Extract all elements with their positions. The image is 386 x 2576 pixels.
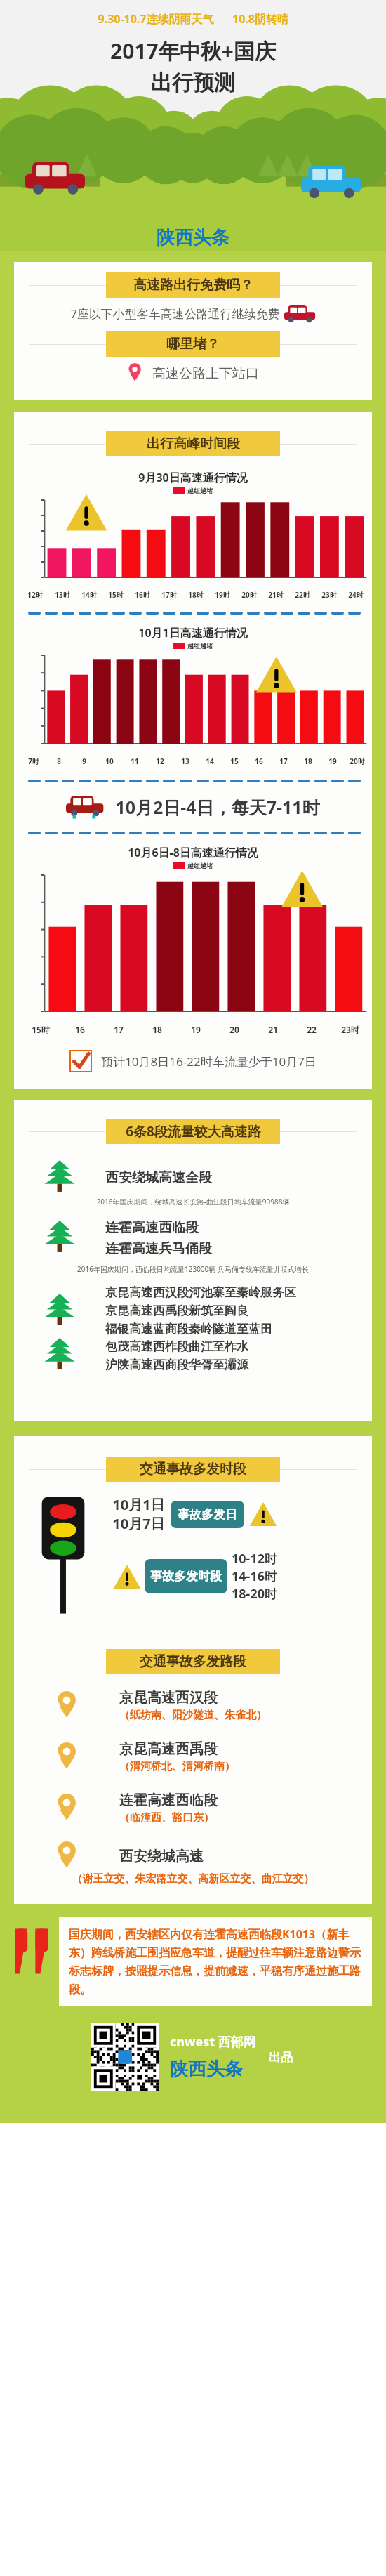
staticText: 22时 — [295, 590, 310, 600]
staticText: 24时 — [348, 590, 364, 600]
staticText: 18 — [304, 756, 312, 766]
staticText: 11 — [131, 756, 139, 766]
staticText: 出品 — [269, 2050, 293, 2065]
staticText: 连霍高速兵马俑段 — [105, 1240, 212, 1257]
staticText: 19 — [328, 756, 337, 766]
staticText: 越红越堵 — [187, 642, 213, 650]
staticText: 交通事故多发时段 — [140, 1461, 246, 1478]
button[interactable]: 西安绕城高速 — [14, 1840, 372, 1872]
staticText: 14-16时 — [232, 1568, 277, 1585]
staticText: 高速路出行免费吗？ — [133, 277, 253, 294]
staticText: 8 — [57, 756, 61, 766]
staticText: 10月7日 — [112, 1514, 165, 1533]
staticText: 20 — [229, 1024, 239, 1035]
button[interactable]: 京昆高速西汉段 — [14, 1689, 372, 1722]
staticText: 事故多发日 — [178, 1507, 237, 1522]
button[interactable]: 事故多发时段 — [150, 1569, 222, 1584]
staticText: 交通事故多发路段 — [140, 1653, 246, 1670]
staticText: （临潼西、豁口东） — [119, 1811, 214, 1825]
staticText: 2017年中秋+国庆 — [0, 37, 386, 65]
staticText: 20时 — [350, 756, 365, 766]
staticText: 福银高速蓝商段秦岭隧道至蓝田 — [105, 1322, 272, 1336]
button[interactable]: 7座以下小型客车高速公路通行继续免费 — [14, 304, 372, 322]
staticText: 15时 — [32, 1024, 50, 1035]
staticText: 10月6日-8日高速通行情况 — [14, 845, 372, 860]
staticText: 17 — [279, 756, 288, 766]
staticText: 越红越堵 — [187, 862, 213, 869]
staticText: 10.8阴转晴 — [232, 11, 288, 27]
staticText: 19时 — [215, 590, 230, 600]
button[interactable]: 连霍高速西临段 — [14, 1219, 372, 1257]
button[interactable]: 交通事故多发时段 — [106, 1457, 280, 1482]
staticText: 22 — [307, 1024, 317, 1035]
staticText: 陕西头条 — [157, 226, 229, 249]
button[interactable]: 哪里堵？ — [106, 331, 280, 357]
staticText: 14 — [206, 756, 214, 766]
staticText: 9.30-10.7连续阴雨天气 — [98, 11, 214, 27]
button[interactable]: 京昆高速西禹段 — [14, 1740, 372, 1773]
button[interactable]: 京昆高速西汉段河池寨至秦岭服务区 — [14, 1285, 372, 1336]
staticText: 23时 — [341, 1024, 359, 1035]
staticText: 10-12时 — [232, 1550, 277, 1568]
staticText: 国庆期间，西安辖区内仅有连霍高速西临段K1013（新丰东）跨线桥施工围挡应急车道… — [69, 1926, 362, 1997]
staticText: 出行预测 — [0, 70, 386, 96]
button[interactable]: 10月2日-4日，每天7-11时 — [14, 794, 372, 820]
staticText: 事故多发时段 — [150, 1569, 222, 1584]
staticText: 14时 — [81, 590, 97, 600]
button[interactable]: 高速公路上下站口 — [14, 362, 372, 386]
staticText: 2016年国庆期间，绕城高速长安路-曲江段日均车流量90988辆 — [24, 1197, 362, 1207]
staticText: 21时 — [268, 590, 284, 600]
staticText: 13 — [181, 756, 189, 766]
staticText: 沪陕高速西商段华胥至灞源 — [105, 1358, 248, 1372]
staticText: 23时 — [321, 590, 337, 600]
staticText: 19 — [191, 1024, 201, 1035]
staticText: 16 — [255, 756, 263, 766]
button[interactable]: 预计10月8日16-22时车流量少于10月7日 — [14, 1051, 372, 1072]
staticText: 18 — [152, 1024, 162, 1035]
staticText: 16时 — [135, 590, 150, 600]
staticText: 21 — [268, 1024, 278, 1035]
staticText: 陕西头条 — [170, 2058, 243, 2081]
staticText: 出行高峰时间段 — [147, 435, 240, 452]
staticText: 16 — [75, 1024, 85, 1035]
staticText: 连霍高速西临段 — [119, 1792, 218, 1809]
button[interactable]: 6条8段流量较大高速路 — [106, 1119, 280, 1144]
staticText: 15时 — [108, 590, 124, 600]
button[interactable]: 出行高峰时间段 — [106, 431, 280, 456]
staticText: 京昆高速西汉段 — [119, 1689, 218, 1707]
button[interactable]: 事故多发日 — [178, 1507, 237, 1522]
staticText: 10 — [105, 756, 114, 766]
button[interactable]: 西安绕城高速全段 — [14, 1159, 372, 1197]
staticText: 7座以下小型客车高速公路通行继续免费 — [70, 305, 280, 322]
staticText: 10月2日-4日，每天7-11时 — [115, 795, 320, 819]
staticText: 京昆高速西禹段新筑至阎良 — [105, 1303, 248, 1318]
staticText: 连霍高速西临段 — [105, 1219, 199, 1236]
button[interactable]: 高速路出行免费吗？ — [106, 272, 280, 298]
staticText: 预计10月8日16-22时车流量少于10月7日 — [101, 1053, 317, 1070]
staticText: 京昆高速西禹段 — [119, 1740, 218, 1758]
staticText: 12时 — [27, 590, 43, 600]
staticText: 15 — [230, 756, 239, 766]
staticText: 6条8段流量较大高速路 — [126, 1122, 261, 1141]
staticText: 京昆高速西汉段河池寨至秦岭服务区 — [105, 1285, 296, 1300]
staticText: （谢王立交、朱宏路立交、高新区立交、曲江立交） — [14, 1872, 372, 1886]
staticText: 9 — [82, 756, 86, 766]
staticText: 哪里堵？ — [166, 336, 220, 353]
button[interactable]: 包茂高速西柞段曲江至柞水 — [14, 1336, 372, 1374]
staticText: 包茂高速西柞段曲江至柞水 — [105, 1339, 248, 1354]
staticText: cnwest 西部网 — [170, 2033, 256, 2051]
staticText: 10月1日高速通行情况 — [14, 625, 372, 640]
staticText: 9月30日高速通行情况 — [14, 470, 372, 485]
staticText: 20时 — [241, 590, 257, 600]
staticText: 18时 — [188, 590, 204, 600]
staticText: 17时 — [161, 590, 177, 600]
button[interactable]: 交通事故多发路段 — [106, 1649, 280, 1674]
staticText: （渭河桥北、渭河桥南） — [119, 1760, 235, 1773]
staticText: 13时 — [55, 590, 70, 600]
button[interactable]: 连霍高速西临段 — [14, 1792, 372, 1825]
staticText: 10月1日 — [112, 1495, 165, 1514]
staticText: 2016年国庆期间，西临段日均流量123000辆 兵马俑专线车流量井喷式增长 — [21, 1264, 365, 1274]
staticText: 西安绕城高速 — [119, 1848, 204, 1865]
staticText: 18-20时 — [232, 1585, 277, 1603]
staticText: 7时 — [28, 756, 39, 766]
